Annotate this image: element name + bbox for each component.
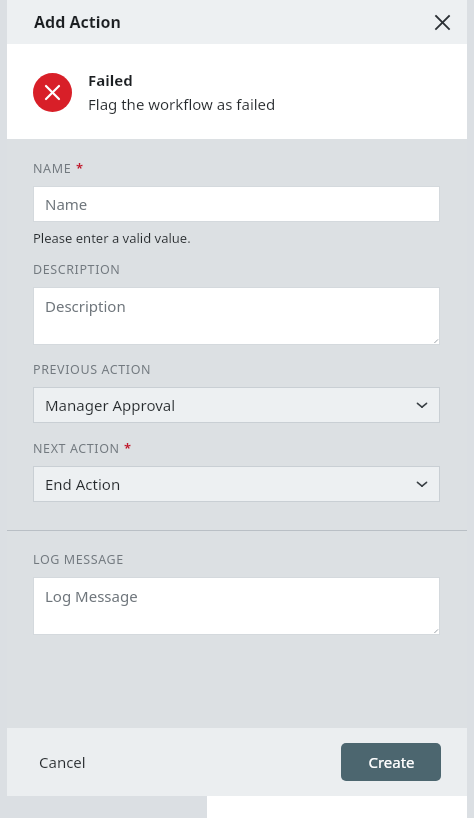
button[interactable]: Create (341, 743, 441, 781)
staticText: PREVIOUS ACTION (33, 361, 152, 378)
button[interactable]: Close (427, 7, 457, 37)
button[interactable]: Description (33, 287, 440, 345)
staticText: Log Message (45, 586, 138, 606)
staticText: NAME (33, 160, 72, 177)
staticText: Add Action (34, 11, 121, 33)
button[interactable]: Name (33, 186, 440, 222)
staticText: * (124, 439, 132, 457)
staticText: * (76, 159, 84, 177)
staticText: Name (45, 194, 88, 214)
button[interactable]: End Action (33, 466, 440, 502)
button[interactable]: Log Message (33, 577, 440, 635)
button[interactable]: Cancel (27, 744, 98, 780)
staticText: Please enter a valid value. (33, 229, 191, 247)
staticText: Create (368, 752, 415, 772)
staticText: End Action (45, 474, 121, 494)
staticText: Description (45, 296, 126, 316)
staticText: Manager Approval (45, 395, 176, 415)
staticText: NEXT ACTION (33, 440, 120, 457)
staticText: Cancel (39, 752, 86, 772)
staticText: DESCRIPTION (33, 261, 121, 278)
staticText: LOG MESSAGE (33, 551, 124, 568)
staticText: Failed (88, 70, 133, 90)
button[interactable]: Manager Approval (33, 387, 440, 423)
staticText: Flag the workflow as failed (88, 94, 276, 114)
